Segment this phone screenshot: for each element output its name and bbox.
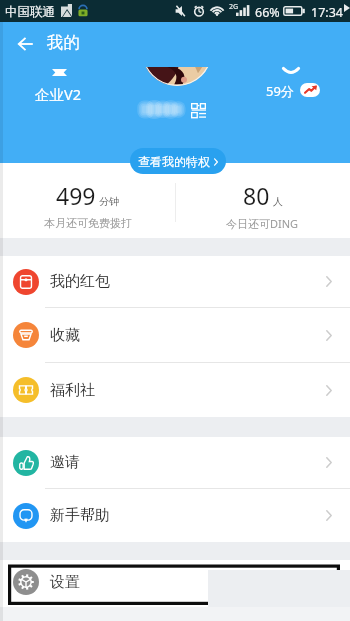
button[interactable]: 我的红包 xyxy=(0,256,350,307)
staticText: 邀请 xyxy=(50,453,80,472)
staticText: 59分 xyxy=(266,82,294,100)
staticText: 收藏 xyxy=(50,326,80,345)
button[interactable]: Back xyxy=(8,27,42,61)
button[interactable]: My QR code xyxy=(188,101,208,121)
staticText: 人 xyxy=(273,195,283,208)
staticText: 今日还可DING xyxy=(226,216,299,231)
staticText: 企业V2 xyxy=(35,84,81,104)
button[interactable]: 新手帮助 xyxy=(0,489,350,542)
staticText: 17:34 xyxy=(311,4,343,21)
button[interactable]: 福利社 xyxy=(0,363,350,417)
staticText: 分钟 xyxy=(99,195,119,208)
staticText: 福利社 xyxy=(50,381,95,400)
button[interactable]: 邀请 xyxy=(0,437,350,488)
button[interactable]: Credit trend xyxy=(300,83,320,97)
staticText: 我的红包 xyxy=(50,272,110,291)
staticText: 2G xyxy=(229,2,239,12)
button[interactable]: 查看我的特权 xyxy=(130,148,226,174)
staticText: 查看我的特权 xyxy=(138,154,210,169)
staticText: 中国联通 xyxy=(5,4,55,20)
staticText: 499 xyxy=(56,180,96,211)
staticText: 80 xyxy=(243,180,270,211)
staticText: 新手帮助 xyxy=(50,506,110,525)
button[interactable]: 设置 xyxy=(0,560,350,604)
staticText: 设置 xyxy=(50,573,80,592)
staticText: 本月还可免费拨打 xyxy=(44,216,132,230)
staticText: 66% xyxy=(255,4,280,21)
staticText: 我的 xyxy=(47,32,80,53)
button[interactable]: 收藏 xyxy=(0,308,350,362)
